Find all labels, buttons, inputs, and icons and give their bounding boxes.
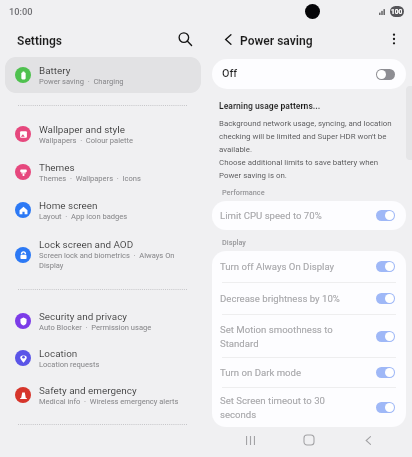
- staticText: Display: [222, 238, 246, 247]
- staticText: Safety and emergency: [39, 385, 137, 397]
- button[interactable]: Turn on Dark mode: [212, 358, 406, 387]
- staticText: Wallpaper and style: [39, 124, 125, 136]
- staticText: 100: [391, 8, 403, 16]
- staticText: Settings: [17, 34, 62, 48]
- button[interactable]: Recents: [235, 425, 265, 455]
- button[interactable]: Lock screen and AOD: [5, 233, 201, 276]
- button[interactable]: Battery: [5, 57, 201, 93]
- button[interactable]: Limit CPU speed to 70%: [212, 201, 406, 230]
- button[interactable]: Off: [212, 59, 406, 89]
- button[interactable]: Turn off Always On Display: [212, 251, 406, 282]
- button[interactable]: Security and privacy: [5, 303, 201, 339]
- button[interactable]: Search: [172, 26, 198, 52]
- staticText: Set Motion smoothness to Standard: [220, 324, 354, 349]
- button[interactable]: Decrease brightness by 10%: [212, 283, 406, 314]
- staticText: Themes · Wallpapers · Icons: [39, 174, 141, 183]
- staticText: 10:00: [9, 6, 33, 17]
- staticText: Medical info · Wireless emergency alerts: [39, 397, 179, 406]
- staticText: Auto Blocker · Permission usage: [39, 323, 152, 332]
- staticText: Home screen: [39, 200, 98, 212]
- button[interactable]: Home: [294, 425, 324, 455]
- staticText: Limit CPU speed to 70%: [220, 210, 354, 221]
- staticText: Layout · App icon badges: [39, 212, 128, 221]
- button[interactable]: Wallpaper and style: [5, 116, 201, 152]
- button[interactable]: Set Screen timeout to 30 seconds: [212, 388, 406, 427]
- staticText: Security and privacy: [39, 311, 128, 323]
- button[interactable]: More options: [382, 27, 406, 51]
- staticText: Choose additional limits to save battery…: [219, 158, 397, 180]
- staticText: Power saving · Charging: [39, 77, 124, 86]
- button[interactable]: Back: [353, 425, 383, 455]
- staticText: Themes: [39, 162, 75, 174]
- button[interactable]: Safety and emergency: [5, 377, 201, 413]
- staticText: Off: [222, 67, 238, 80]
- staticText: Performance: [222, 188, 265, 197]
- staticText: Turn on Dark mode: [220, 367, 354, 378]
- staticText: Set Screen timeout to 30 seconds: [220, 395, 354, 420]
- staticText: Screen lock and biometrics · Always On D…: [39, 251, 183, 270]
- staticText: Decrease brightness by 10%: [220, 293, 354, 304]
- staticText: Location requests: [39, 360, 100, 369]
- staticText: Wallpapers · Colour palette: [39, 136, 133, 145]
- staticText: Lock screen and AOD: [39, 239, 134, 251]
- staticText: Background network usage, syncing, and l…: [219, 119, 397, 154]
- staticText: Turn off Always On Display: [220, 261, 354, 272]
- button[interactable]: Themes: [5, 154, 201, 190]
- staticText: Battery: [39, 65, 71, 77]
- button[interactable]: Home screen: [5, 192, 201, 228]
- staticText: Learning usage patterns...: [219, 101, 321, 111]
- button[interactable]: Back: [216, 27, 240, 51]
- button[interactable]: Location: [5, 340, 201, 376]
- button[interactable]: Set Motion smoothness to Standard: [212, 315, 406, 357]
- staticText: Power saving: [240, 34, 313, 48]
- staticText: Location: [39, 348, 78, 360]
